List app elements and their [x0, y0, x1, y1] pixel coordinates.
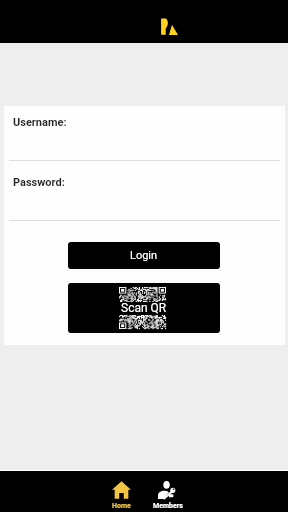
- staticText: Home: [112, 502, 131, 510]
- staticText: Scan QR: [121, 301, 167, 315]
- button[interactable]: Home: [99, 471, 144, 512]
- button[interactable]: Scan QR: [68, 283, 220, 333]
- staticText: Username:: [13, 116, 67, 129]
- button[interactable]: Members: [145, 471, 190, 512]
- button[interactable]: Login: [68, 242, 220, 269]
- staticText: Login: [130, 249, 158, 262]
- button[interactable]: App logo: [161, 18, 178, 35]
- staticText: Password:: [13, 176, 65, 189]
- staticText: Members: [153, 502, 183, 510]
